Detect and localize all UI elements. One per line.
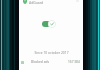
staticText: AdGuard: [29, 0, 44, 4]
staticText: 167 384: [68, 60, 80, 64]
button[interactable]: Blocked ads: [19, 59, 83, 65]
button[interactable]: Protection toggle: [42, 20, 56, 28]
staticText: Since 10 october 2017: [34, 50, 69, 54]
staticText: Blocked ads: [31, 60, 49, 64]
